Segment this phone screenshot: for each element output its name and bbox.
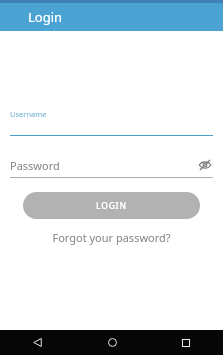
staticText: Password [10, 158, 197, 173]
staticText: Login [28, 8, 63, 26]
button[interactable]: Password [10, 157, 213, 178]
button[interactable]: LOGIN [23, 192, 200, 219]
button[interactable]: Home [75, 330, 149, 355]
button[interactable]: Toggle password visibility [197, 157, 213, 173]
button[interactable]: Back [0, 330, 75, 355]
staticText: LOGIN [96, 200, 127, 212]
button[interactable]: Username [10, 109, 213, 136]
button[interactable]: Recents [149, 330, 223, 355]
button[interactable]: Forgot your password? [44, 227, 179, 248]
staticText: Username [10, 109, 47, 119]
